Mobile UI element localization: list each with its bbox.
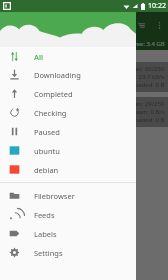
staticText: Settings bbox=[34, 248, 63, 258]
staticText: Down: 23.7 kB/s bbox=[119, 73, 165, 81]
staticText: 10:22 bbox=[148, 1, 166, 11]
staticText: Paused bbox=[34, 127, 60, 137]
staticText: Filebrowser bbox=[34, 191, 75, 201]
button[interactable]: Feeds bbox=[0, 205, 136, 224]
button[interactable]: Completed bbox=[0, 84, 136, 103]
button[interactable]: Paused bbox=[0, 122, 136, 141]
staticText: Pieces: 29/250 bbox=[124, 100, 165, 108]
staticText: Labels bbox=[34, 229, 57, 239]
staticText: Feeds bbox=[34, 210, 55, 220]
button[interactable]: Labels bbox=[0, 224, 136, 243]
staticText: Downloading bbox=[34, 70, 81, 80]
button[interactable]: Sort bbox=[136, 20, 147, 31]
button[interactable]: ubuntu bbox=[0, 141, 136, 160]
staticText: Uploaded: 0 B bbox=[125, 116, 165, 124]
staticText: Pieces: 60/250 bbox=[124, 65, 165, 73]
button[interactable]: All bbox=[0, 48, 136, 65]
staticText: debian bbox=[34, 165, 59, 175]
staticText: Free: 3.4 GB bbox=[131, 40, 165, 48]
staticText: Completed bbox=[34, 89, 73, 99]
button[interactable]: Checking bbox=[0, 103, 136, 122]
button[interactable]: More options bbox=[154, 20, 165, 31]
button[interactable]: debian bbox=[0, 160, 136, 179]
button[interactable]: Settings bbox=[0, 243, 136, 262]
staticText: ubuntu bbox=[34, 146, 60, 156]
staticText: Down: 0 B/s bbox=[131, 108, 165, 116]
button[interactable]: Filebrowser bbox=[0, 186, 136, 205]
staticText: Checking bbox=[34, 108, 67, 118]
staticText: All bbox=[34, 52, 43, 62]
staticText: Uploaded: 0 B bbox=[125, 81, 165, 89]
button[interactable]: Downloading bbox=[0, 65, 136, 84]
